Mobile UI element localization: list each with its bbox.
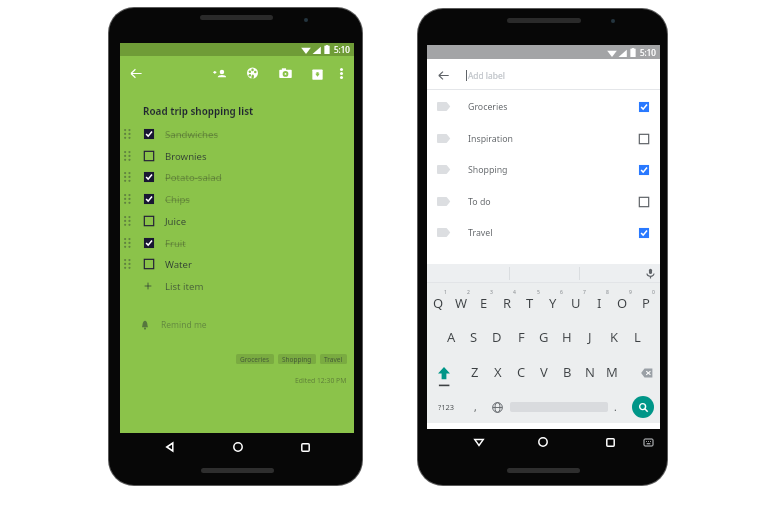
staticText: P [642, 294, 650, 312]
button[interactable]: Remind me [120, 317, 354, 333]
button[interactable]: I [588, 292, 610, 314]
button[interactable]: Add collaborator [209, 63, 231, 85]
button[interactable]: Recents [603, 435, 617, 449]
button[interactable]: Shopping [278, 354, 316, 364]
staticText: Juice [165, 215, 187, 228]
button[interactable]: Z [464, 361, 486, 383]
staticText: Add label [468, 70, 505, 81]
button[interactable]: G [533, 326, 555, 348]
button[interactable]: C [510, 361, 532, 383]
button[interactable]: J [579, 326, 601, 348]
staticText: Travel [468, 227, 493, 239]
staticText: Brownies [165, 150, 207, 163]
staticText: S [470, 328, 478, 346]
staticText: List item [165, 280, 204, 293]
button[interactable]: Back [163, 440, 177, 454]
button[interactable]: Water [120, 253, 354, 275]
button[interactable]: L [626, 326, 648, 348]
staticText: Inspiration [468, 133, 513, 145]
button[interactable]: Switch keyboard [642, 436, 654, 448]
button[interactable]: Backspace [637, 367, 653, 379]
button[interactable]: , [469, 399, 481, 415]
button[interactable]: A [440, 326, 462, 348]
button[interactable]: R [496, 292, 518, 314]
button[interactable]: Y [542, 292, 564, 314]
staticText: Sandwiches [165, 128, 219, 141]
staticText: Edited 12:30 PM [295, 376, 347, 385]
button[interactable]: More options [330, 62, 352, 84]
button[interactable]: Inspiration [427, 123, 660, 154]
button[interactable]: Change colour [241, 62, 263, 84]
button[interactable]: O [611, 292, 633, 314]
button[interactable]: X [487, 361, 509, 383]
button[interactable]: D [486, 326, 508, 348]
staticText: 8 [606, 289, 609, 296]
staticText: Chips [165, 193, 190, 206]
button[interactable]: Camera [274, 62, 296, 84]
button[interactable]: Back [472, 435, 486, 449]
staticText: 7 [583, 289, 586, 296]
staticText: O [617, 294, 628, 312]
button[interactable]: V [533, 361, 555, 383]
button[interactable]: Travel [320, 354, 347, 364]
button[interactable]: Search [632, 396, 654, 418]
button[interactable]: W [450, 292, 472, 314]
staticText: T [526, 294, 534, 312]
button[interactable]: F [510, 326, 532, 348]
button[interactable]: Travel [427, 217, 660, 248]
staticText: Groceries [468, 101, 508, 113]
button[interactable]: H [556, 326, 578, 348]
button[interactable]: Juice [120, 210, 354, 232]
button[interactable]: Potato-salad [120, 166, 354, 188]
button[interactable]: S [463, 326, 485, 348]
staticText: L [634, 328, 641, 346]
staticText: Road trip shopping list [143, 105, 254, 118]
staticText: Y [549, 294, 557, 312]
staticText: 6 [560, 289, 563, 296]
staticText: Shopping [282, 355, 312, 364]
button[interactable]: Chips [120, 188, 354, 210]
button[interactable]: Groceries [427, 91, 660, 122]
button[interactable]: Recents [298, 440, 312, 454]
button[interactable]: Change language [492, 402, 503, 413]
staticText: 2 [467, 289, 470, 296]
staticText: To do [468, 196, 491, 208]
button[interactable]: . [609, 399, 621, 415]
staticText: X [494, 363, 502, 381]
staticText: N [585, 363, 595, 381]
button[interactable]: U [565, 292, 587, 314]
staticText: E [480, 294, 488, 312]
button[interactable]: M [601, 361, 623, 383]
button[interactable]: Groceries [236, 354, 274, 364]
button[interactable]: Archive [306, 63, 328, 85]
button[interactable]: T [519, 292, 541, 314]
button[interactable]: Q [427, 292, 449, 314]
staticText: I [597, 294, 602, 312]
button[interactable]: Back [437, 69, 450, 82]
button[interactable]: Shopping [427, 154, 660, 185]
button[interactable]: E [473, 292, 495, 314]
button[interactable]: P [635, 292, 657, 314]
button[interactable]: Home [536, 435, 550, 449]
staticText: R [503, 294, 512, 312]
button[interactable]: Home [231, 440, 245, 454]
button[interactable]: Shift [433, 363, 455, 385]
staticText: F [518, 328, 525, 346]
button[interactable]: List item [120, 275, 354, 297]
button[interactable]: Sandwiches [120, 123, 354, 145]
staticText: Q [433, 294, 444, 312]
button[interactable]: Brownies [120, 145, 354, 167]
button[interactable]: Voice input [645, 268, 656, 279]
staticText: 1 [444, 289, 447, 296]
button[interactable]: Fruit [120, 232, 354, 254]
button[interactable]: K [603, 326, 625, 348]
button[interactable]: Back [125, 62, 147, 84]
button[interactable]: To do [427, 186, 660, 217]
button[interactable]: ?123 [434, 399, 458, 415]
staticText: J [588, 328, 592, 346]
staticText: V [540, 363, 548, 381]
button[interactable]: N [579, 361, 601, 383]
button[interactable]: B [556, 361, 578, 383]
staticText: A [447, 328, 456, 346]
